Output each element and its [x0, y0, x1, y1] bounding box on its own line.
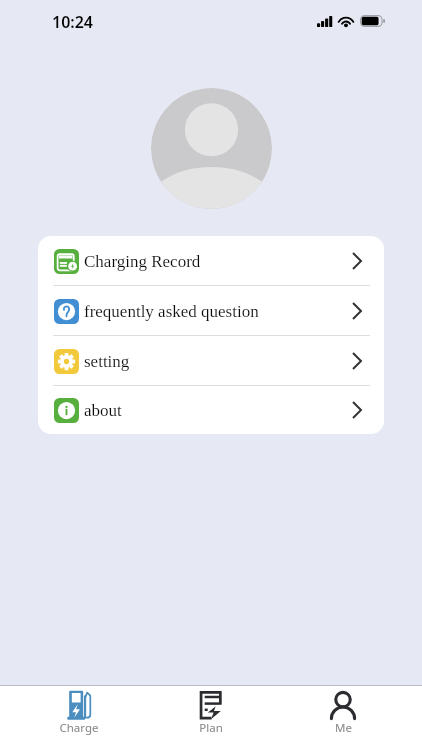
- staticText: 10:24: [52, 11, 94, 33]
- button[interactable]: frequently asked question: [38, 286, 384, 336]
- staticText: Charging Record: [84, 252, 201, 271]
- button[interactable]: Profile photo: [151, 88, 272, 209]
- button[interactable]: setting: [38, 336, 384, 386]
- staticText: Plan: [199, 720, 223, 736]
- staticText: setting: [84, 352, 130, 371]
- button[interactable]: Plan: [145, 686, 277, 750]
- button[interactable]: about: [38, 386, 384, 434]
- other: Open: [352, 352, 362, 370]
- other: Open: [352, 302, 362, 320]
- staticText: about: [84, 401, 122, 420]
- button[interactable]: Charging Record: [38, 236, 384, 286]
- button[interactable]: Me: [277, 686, 409, 750]
- staticText: frequently asked question: [84, 302, 259, 321]
- other: Open: [352, 401, 362, 419]
- other: Open: [352, 252, 362, 270]
- staticText: Charge: [59, 720, 99, 736]
- button[interactable]: Charge: [13, 686, 145, 750]
- staticText: Me: [335, 720, 352, 736]
